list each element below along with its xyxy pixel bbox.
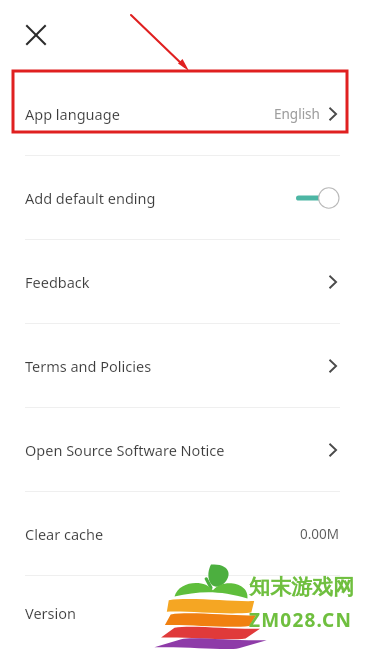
button[interactable]: Feedback <box>0 240 365 323</box>
staticText: Clear cache <box>25 524 104 544</box>
button[interactable]: App language <box>0 72 365 155</box>
button[interactable]: Add default ending toggle <box>294 185 340 211</box>
button[interactable]: Add default ending <box>0 156 365 239</box>
staticText: Open Source Software Notice <box>25 440 225 460</box>
staticText: 0.00M <box>300 525 340 543</box>
staticText: Add default ending <box>25 188 156 208</box>
button[interactable]: Terms and Policies <box>0 324 365 407</box>
button[interactable]: Close <box>22 21 50 49</box>
button[interactable]: Clear cache <box>0 492 365 575</box>
staticText: ZM028.CN <box>249 607 353 633</box>
staticText: Terms and Policies <box>25 356 152 376</box>
staticText: App language <box>25 104 120 124</box>
staticText: Version <box>25 603 76 623</box>
button[interactable]: Open Source Software Notice <box>0 408 365 491</box>
button[interactable]: Version <box>0 576 365 650</box>
staticText: 知末游戏网 <box>249 574 354 600</box>
staticText: English <box>274 105 320 123</box>
staticText: Feedback <box>25 272 90 292</box>
